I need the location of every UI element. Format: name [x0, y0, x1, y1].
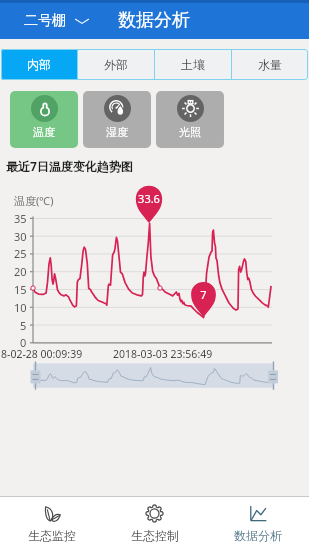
button[interactable]: 生态控制: [103, 497, 206, 550]
staticText: 0: [20, 335, 27, 350]
staticText: 10: [14, 300, 27, 315]
button[interactable]: 二号棚: [24, 12, 89, 30]
staticText: 外部: [104, 57, 128, 72]
staticText: 温度: [33, 125, 55, 139]
staticText: 水量: [258, 57, 282, 72]
button[interactable]: 光照: [156, 91, 224, 148]
button[interactable]: 生态监控: [0, 497, 103, 550]
staticText: 光照: [179, 125, 201, 139]
button[interactable]: 水量: [232, 49, 308, 80]
staticText: 30: [14, 229, 27, 244]
staticText: 2018-03-03 23:56:49: [113, 347, 213, 361]
button[interactable]: 温度: [10, 91, 78, 148]
staticText: 温度(℃): [14, 193, 54, 208]
staticText: 7: [200, 287, 207, 302]
staticText: 8-02-28 00:09:39: [1, 347, 83, 361]
staticText: 15: [14, 282, 27, 297]
button[interactable]: 内部: [1, 49, 77, 80]
button[interactable]: 土壤: [155, 49, 231, 80]
staticText: 内部: [27, 57, 51, 72]
staticText: 土壤: [181, 57, 205, 72]
staticText: 数据分析: [234, 528, 282, 543]
staticText: 二号棚: [24, 12, 66, 30]
button[interactable]: 外部: [78, 49, 154, 80]
button[interactable]: 湿度: [83, 91, 151, 148]
staticText: 33.6: [138, 191, 160, 206]
staticText: 数据分析: [118, 9, 190, 32]
staticText: 生态监控: [28, 528, 76, 543]
staticText: 5: [20, 318, 27, 333]
staticText: 20: [14, 264, 27, 279]
staticText: 25: [14, 246, 27, 261]
staticText: 35: [14, 211, 27, 226]
staticText: 最近7日温度变化趋势图: [6, 158, 133, 174]
staticText: 生态控制: [131, 528, 179, 543]
staticText: 湿度: [106, 125, 128, 139]
button[interactable]: 数据分析: [206, 497, 309, 550]
